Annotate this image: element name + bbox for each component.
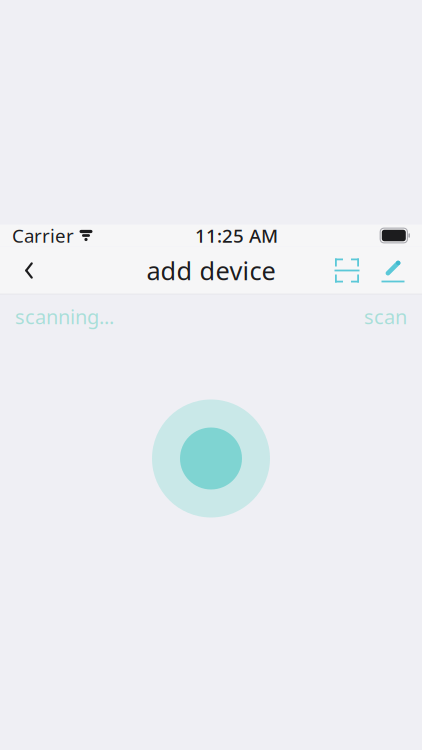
button[interactable]: Scan QR code [324, 247, 370, 293]
button[interactable]: Edit [370, 247, 416, 293]
button[interactable]: scan [364, 303, 407, 330]
staticText: scanning... [15, 303, 114, 330]
staticText: scan [364, 303, 407, 330]
button[interactable]: Back [6, 247, 52, 293]
staticText: add device [146, 254, 275, 287]
staticText: Carrier [12, 223, 74, 248]
staticText: 11:25 AM [195, 223, 278, 248]
